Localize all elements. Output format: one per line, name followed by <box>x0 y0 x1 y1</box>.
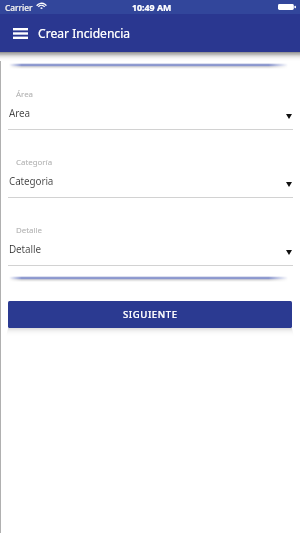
staticText: Categoria <box>9 174 54 187</box>
button[interactable]: SIGUIENTE <box>8 301 292 328</box>
staticText: Categoría <box>16 157 53 168</box>
staticText: Crear Incidencia <box>38 25 131 41</box>
staticText: SIGUIENTE <box>123 308 178 321</box>
button[interactable]: Área <box>0 86 300 132</box>
staticText: Área <box>16 89 34 100</box>
staticText: Detalle <box>16 225 43 236</box>
button[interactable]: Categoría <box>0 154 300 200</box>
button[interactable]: Detalle <box>0 222 300 268</box>
staticText: Carrier <box>5 2 33 13</box>
staticText: Area <box>9 106 30 119</box>
staticText: Detalle <box>9 242 41 255</box>
button[interactable]: Menu <box>13 28 28 39</box>
staticText: 10:49 AM <box>132 2 172 14</box>
